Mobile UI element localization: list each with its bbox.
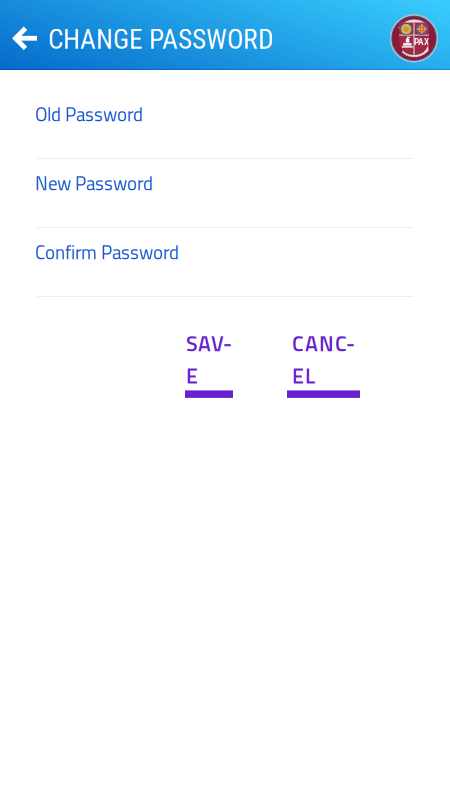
staticText: New Password	[35, 169, 153, 197]
button[interactable]: CANCEL	[287, 327, 363, 398]
button[interactable]: Back	[0, 3, 50, 73]
staticText: CHANGE PASSWORD	[48, 23, 274, 55]
staticText: Confirm Password	[35, 238, 179, 266]
staticText: CANCEL	[292, 327, 355, 392]
staticText: SAVE	[186, 327, 232, 392]
staticText: PAX	[414, 36, 429, 47]
staticText: Old Password	[35, 100, 143, 128]
button[interactable]: SAVE	[185, 327, 233, 398]
